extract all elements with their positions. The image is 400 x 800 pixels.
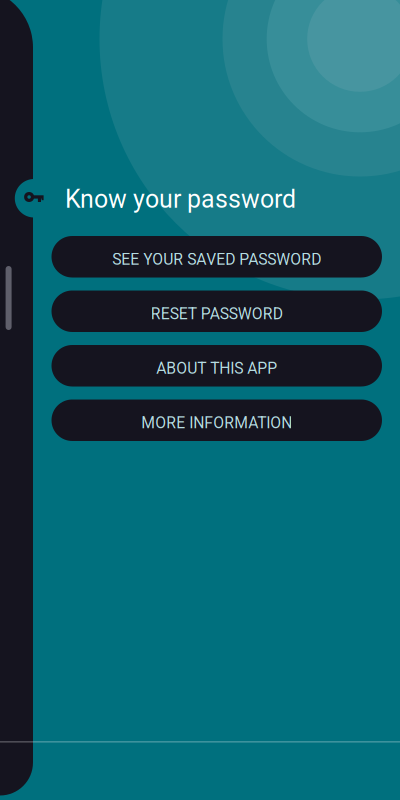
staticText: Know your password: [65, 184, 296, 214]
staticText: SEE YOUR SAVED PASSWORD: [112, 250, 321, 268]
button[interactable]: ABOUT THIS APP: [51, 345, 382, 386]
button[interactable]: MORE INFORMATION: [51, 399, 382, 441]
staticText: MORE INFORMATION: [141, 414, 292, 432]
staticText: ABOUT THIS APP: [156, 359, 277, 377]
button[interactable]: SEE YOUR SAVED PASSWORD: [51, 236, 382, 277]
button[interactable]: RESET PASSWORD: [51, 290, 382, 332]
staticText: RESET PASSWORD: [151, 305, 283, 323]
